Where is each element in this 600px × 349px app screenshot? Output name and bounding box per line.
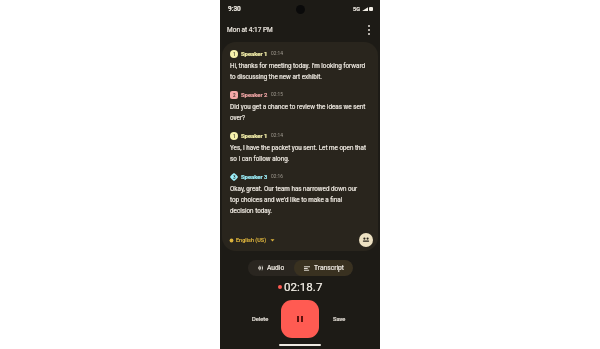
staticText: 2 [233,93,236,98]
button[interactable]: Save [333,316,346,323]
button[interactable]: English (US) [229,237,275,243]
staticText: 02:16 [271,174,283,180]
staticText: 9:30 [228,5,241,13]
button[interactable]: Audio [248,260,294,276]
staticText: 1 [233,52,236,57]
staticText: 02:14 [271,51,283,57]
staticText: Yes, I have the packet you sent. Let me … [230,144,366,162]
staticText: Speaker 3 [241,174,268,181]
button[interactable]: More options [361,22,377,38]
staticText: 02:18.7 [284,280,323,294]
staticText: Did you get a chance to review the ideas… [230,103,366,121]
staticText: Audio [267,264,285,272]
staticText: 3 [233,175,236,180]
staticText: Speaker 1 [241,51,268,58]
staticText: Mon at 4:17 PM [227,26,273,34]
button[interactable]: Speakers [359,233,373,247]
staticText: 1 [233,134,236,139]
staticText: Speaker 2 [241,92,268,99]
staticText: Speaker 1 [241,133,268,140]
button[interactable]: Transcript [294,260,353,276]
staticText: Hi, thanks for meeting today. I'm lookin… [230,62,366,80]
staticText: Transcript [314,264,344,272]
staticText: Okay, great. Our team has narrowed down … [230,185,366,214]
staticText: 5G [353,6,360,12]
staticText: 02:15 [271,92,283,98]
staticText: English (US) [236,237,267,243]
staticText: 02:14 [271,133,283,139]
button[interactable]: Pause recording [281,300,319,338]
button[interactable]: Delete [252,316,269,323]
